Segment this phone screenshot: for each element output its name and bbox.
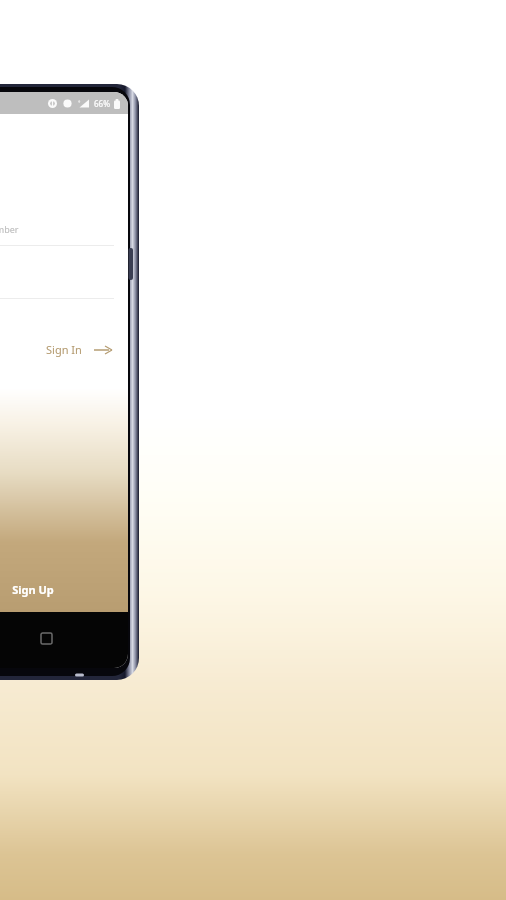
button[interactable]: Phone Number	[0, 218, 128, 246]
staticText: Phone Number	[0, 223, 19, 235]
staticText: Sign Up	[12, 582, 54, 597]
button[interactable]: Recent apps	[34, 626, 58, 650]
staticText: 66%	[94, 98, 110, 109]
button[interactable]: Sign Up	[0, 566, 128, 612]
staticText: Sign In	[46, 342, 82, 357]
button[interactable]	[0, 271, 128, 299]
button[interactable]: Sign In	[30, 334, 128, 365]
